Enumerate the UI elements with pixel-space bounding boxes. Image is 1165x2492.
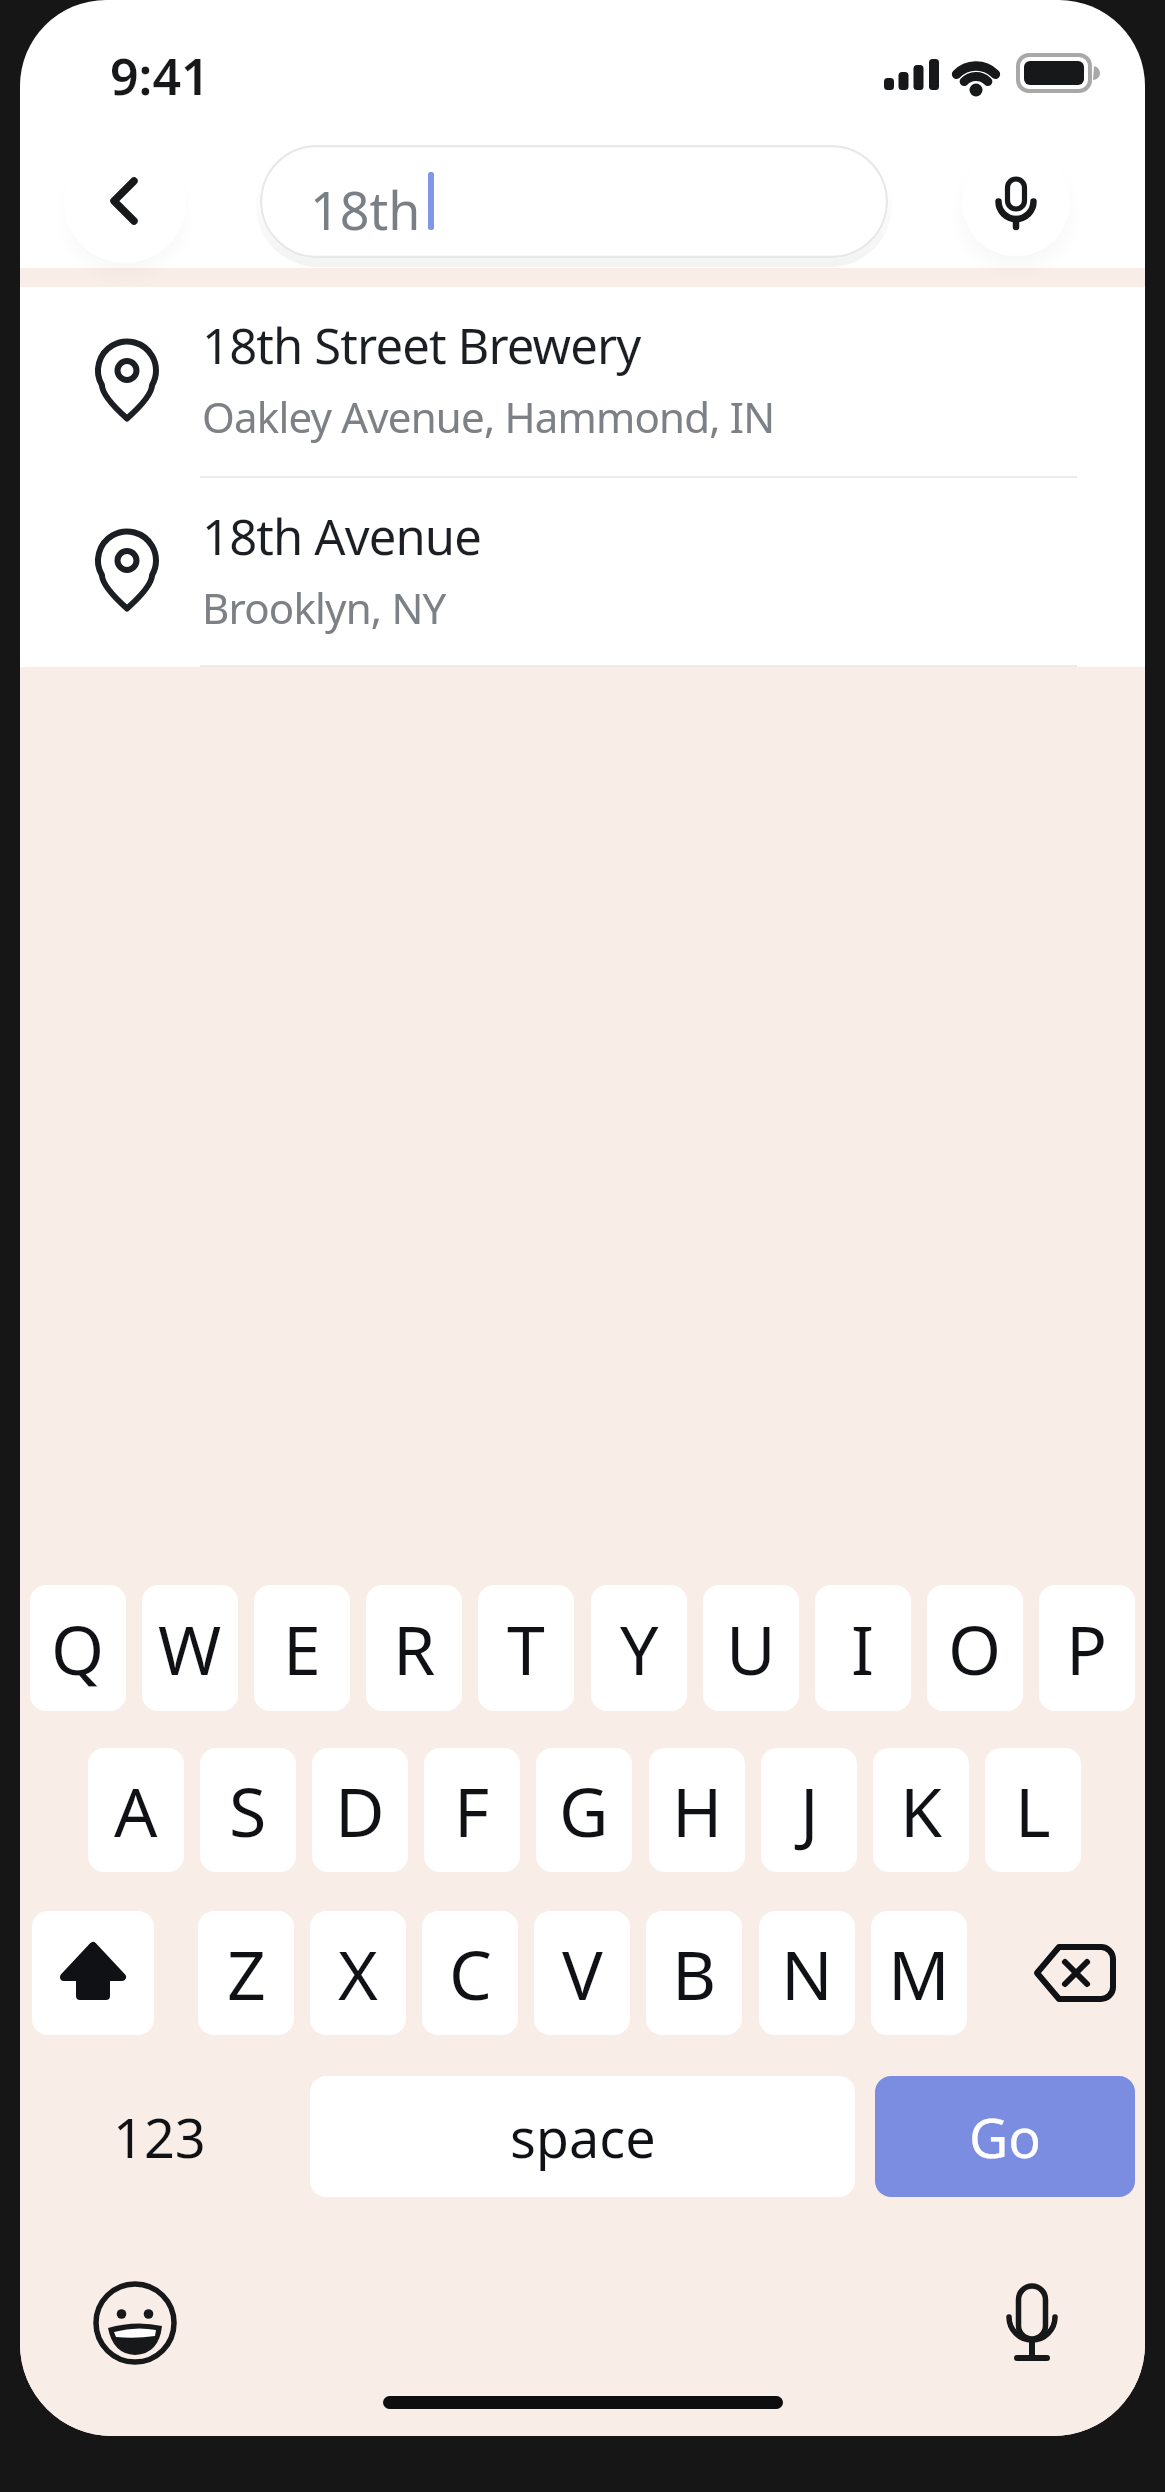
staticText: R <box>393 1602 436 1695</box>
button[interactable]: P <box>1039 1585 1135 1711</box>
staticText: E <box>283 1602 321 1695</box>
button[interactable]: X <box>310 1911 406 2035</box>
staticText: C <box>449 1927 492 2020</box>
staticText: P <box>1066 1602 1108 1695</box>
staticText: Go <box>969 2100 1041 2174</box>
staticText: 9:41 <box>110 42 210 110</box>
button[interactable]: W <box>142 1585 238 1711</box>
button[interactable]: O <box>927 1585 1023 1711</box>
button[interactable]: C <box>422 1911 518 2035</box>
staticText: L <box>1015 1764 1051 1857</box>
staticText: O <box>948 1602 1002 1695</box>
button[interactable]: 123 <box>84 2076 234 2197</box>
button[interactable] <box>32 1911 154 2035</box>
button[interactable]: V <box>534 1911 630 2035</box>
button[interactable]: R <box>366 1585 462 1711</box>
staticText: 18th <box>310 174 421 245</box>
staticText: I <box>851 1602 875 1695</box>
button[interactable]: J <box>761 1748 857 1872</box>
staticText: U <box>726 1602 776 1695</box>
button[interactable] <box>962 148 1070 256</box>
button[interactable]: N <box>759 1911 855 2035</box>
staticText: N <box>781 1927 833 2020</box>
button[interactable]: S <box>200 1748 296 1872</box>
button[interactable] <box>64 141 186 263</box>
staticText: X <box>338 1927 378 2020</box>
button[interactable]: L <box>985 1748 1081 1872</box>
button[interactable]: Q <box>30 1585 126 1711</box>
button[interactable] <box>1015 1911 1135 2035</box>
button[interactable]: 18th Street Brewery <box>20 287 1145 478</box>
staticText: F <box>454 1764 490 1857</box>
staticText: B <box>672 1927 717 2020</box>
button[interactable]: space <box>310 2076 855 2197</box>
staticText: 18th Street Brewery <box>202 312 641 379</box>
button[interactable]: G <box>536 1748 632 1872</box>
staticText: Oakley Avenue, Hammond, IN <box>202 388 775 445</box>
button[interactable]: Z <box>198 1911 294 2035</box>
staticText: Brooklyn, NY <box>202 579 446 636</box>
staticText: S <box>229 1764 267 1857</box>
button[interactable]: F <box>424 1748 520 1872</box>
staticText: J <box>800 1764 819 1857</box>
staticText: K <box>900 1764 943 1857</box>
staticText: G <box>559 1764 609 1857</box>
staticText: V <box>562 1927 603 2020</box>
staticText: M <box>888 1927 950 2020</box>
button[interactable]: H <box>649 1748 745 1872</box>
staticText: H <box>672 1764 723 1857</box>
staticText: space <box>510 2100 656 2174</box>
button[interactable]: I <box>815 1585 911 1711</box>
staticText: T <box>507 1602 545 1695</box>
staticText: D <box>335 1764 385 1857</box>
button[interactable]: T <box>478 1585 574 1711</box>
staticText: Q <box>51 1602 105 1695</box>
button[interactable]: A <box>88 1748 184 1872</box>
staticText: Y <box>620 1602 659 1695</box>
button[interactable]: B <box>646 1911 742 2035</box>
button[interactable]: D <box>312 1748 408 1872</box>
button[interactable]: Y <box>591 1585 687 1711</box>
button[interactable] <box>990 2278 1074 2362</box>
staticText: A <box>114 1764 158 1857</box>
button[interactable]: Go <box>875 2076 1135 2197</box>
button[interactable]: U <box>703 1585 799 1711</box>
staticText: 123 <box>113 2100 206 2174</box>
button[interactable]: 18th Avenue <box>20 478 1145 667</box>
button[interactable]: 18th <box>260 145 888 258</box>
staticText: Z <box>227 1927 266 2020</box>
staticText: W <box>158 1602 222 1695</box>
button[interactable]: K <box>873 1748 969 1872</box>
staticText: 18th Avenue <box>202 503 481 570</box>
button[interactable]: E <box>254 1585 350 1711</box>
button[interactable] <box>93 2281 177 2365</box>
button[interactable]: M <box>871 1911 967 2035</box>
